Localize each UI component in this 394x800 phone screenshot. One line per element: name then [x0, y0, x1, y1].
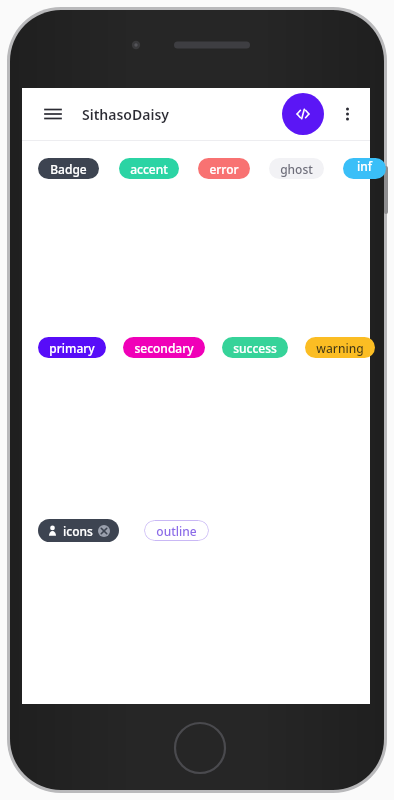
button[interactable]: icons [38, 519, 119, 542]
button[interactable]: accent [119, 158, 179, 179]
staticText: info [354, 158, 375, 179]
button[interactable]: warning [305, 337, 375, 358]
staticText: error [209, 161, 239, 177]
staticText: warning [316, 340, 364, 356]
staticText: secondary [134, 340, 194, 356]
staticText: SithasoDaisy [82, 105, 169, 124]
button[interactable]: primary [38, 337, 106, 358]
staticText: accent [130, 161, 168, 177]
button[interactable]: info [343, 158, 386, 179]
button[interactable]: secondary [123, 337, 205, 358]
staticText: primary [49, 340, 95, 356]
button[interactable]: success [222, 337, 288, 358]
button[interactable]: Code [282, 93, 324, 135]
button[interactable]: outline [144, 520, 209, 541]
button[interactable]: More options [332, 99, 362, 129]
button[interactable]: Badge [38, 158, 99, 179]
staticText: icons [63, 523, 93, 539]
button[interactable]: ghost [269, 158, 324, 179]
button[interactable]: error [198, 158, 250, 179]
staticText: outline [156, 523, 197, 539]
button[interactable]: Menu [36, 97, 70, 131]
staticText: success [233, 340, 277, 356]
staticText: ghost [280, 161, 313, 177]
staticText: Badge [50, 161, 87, 177]
